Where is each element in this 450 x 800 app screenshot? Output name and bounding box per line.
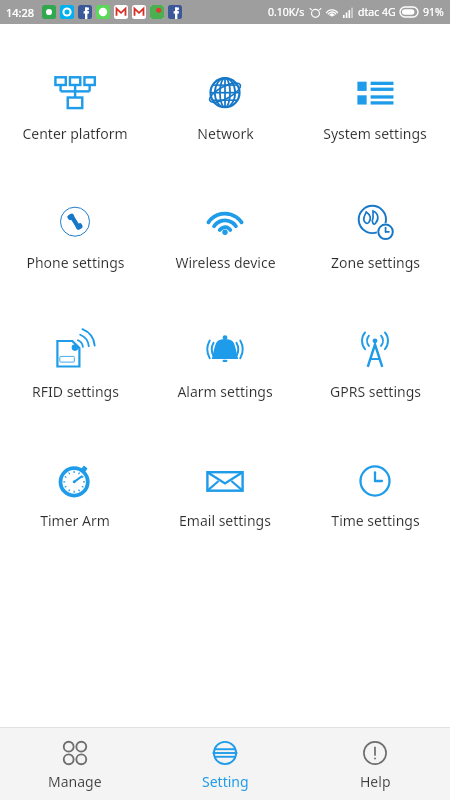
button[interactable]: Center platform xyxy=(0,68,150,147)
button[interactable]: Network xyxy=(150,68,300,147)
staticText: Phone settings xyxy=(26,253,125,272)
staticText: Network xyxy=(197,124,254,143)
staticText: RFID settings xyxy=(32,382,119,401)
staticText: 0.10K/s xyxy=(268,5,305,19)
staticText: Alarm settings xyxy=(177,382,273,401)
button[interactable]: Email settings xyxy=(150,455,300,534)
staticText: Email settings xyxy=(179,511,271,530)
staticText: GPRS settings xyxy=(330,382,421,401)
staticText: 14:28 xyxy=(6,5,35,20)
staticText: System settings xyxy=(323,124,427,143)
button[interactable]: Zone settings xyxy=(300,197,450,276)
staticText: Manage xyxy=(48,772,102,791)
staticText: Time settings xyxy=(331,511,420,530)
button[interactable]: Wireless device xyxy=(150,197,300,276)
staticText: Zone settings xyxy=(331,253,420,272)
button[interactable]: System settings xyxy=(300,68,450,147)
button[interactable]: Help xyxy=(300,728,450,800)
button[interactable]: GPRS settings xyxy=(300,326,450,405)
staticText: Wireless device xyxy=(175,253,276,272)
staticText: dtac 4G xyxy=(358,5,396,19)
button[interactable]: Alarm settings xyxy=(150,326,300,405)
staticText: Help xyxy=(360,772,391,791)
staticText: Center platform xyxy=(22,124,128,143)
button[interactable]: Time settings xyxy=(300,455,450,534)
button[interactable]: RFID settings xyxy=(0,326,150,405)
button[interactable]: Manage xyxy=(0,728,150,800)
button[interactable]: Setting xyxy=(150,728,300,800)
staticText: Setting xyxy=(202,772,249,791)
staticText: 91% xyxy=(423,5,444,19)
staticText: Timer Arm xyxy=(40,511,110,530)
button[interactable]: Phone settings xyxy=(0,197,150,276)
button[interactable]: Timer Arm xyxy=(0,455,150,534)
